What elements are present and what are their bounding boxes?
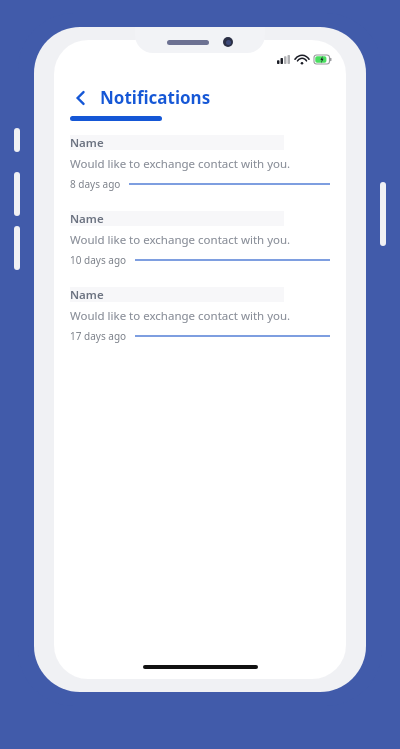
other: Wi-Fi bbox=[296, 55, 308, 64]
button[interactable]: Back bbox=[70, 87, 92, 109]
button[interactable]: Name bbox=[70, 287, 338, 343]
button[interactable]: Back bbox=[70, 84, 211, 111]
staticText: 10 days ago bbox=[70, 253, 127, 267]
staticText: Name bbox=[70, 211, 104, 226]
staticText: Would like to exchange contact with you. bbox=[70, 156, 291, 172]
button[interactable]: Name bbox=[70, 211, 338, 267]
staticText: 17 days ago bbox=[70, 329, 127, 343]
staticText: Name bbox=[70, 287, 104, 302]
button[interactable]: Name bbox=[70, 135, 338, 191]
staticText: Notifications bbox=[100, 86, 211, 109]
other: Battery charging bbox=[314, 55, 332, 64]
staticText: Name bbox=[70, 135, 104, 150]
staticText: Would like to exchange contact with you. bbox=[70, 308, 291, 324]
staticText: 8 days ago bbox=[70, 177, 121, 191]
staticText: Would like to exchange contact with you. bbox=[70, 232, 291, 248]
other: Cellular signal bbox=[277, 55, 290, 64]
